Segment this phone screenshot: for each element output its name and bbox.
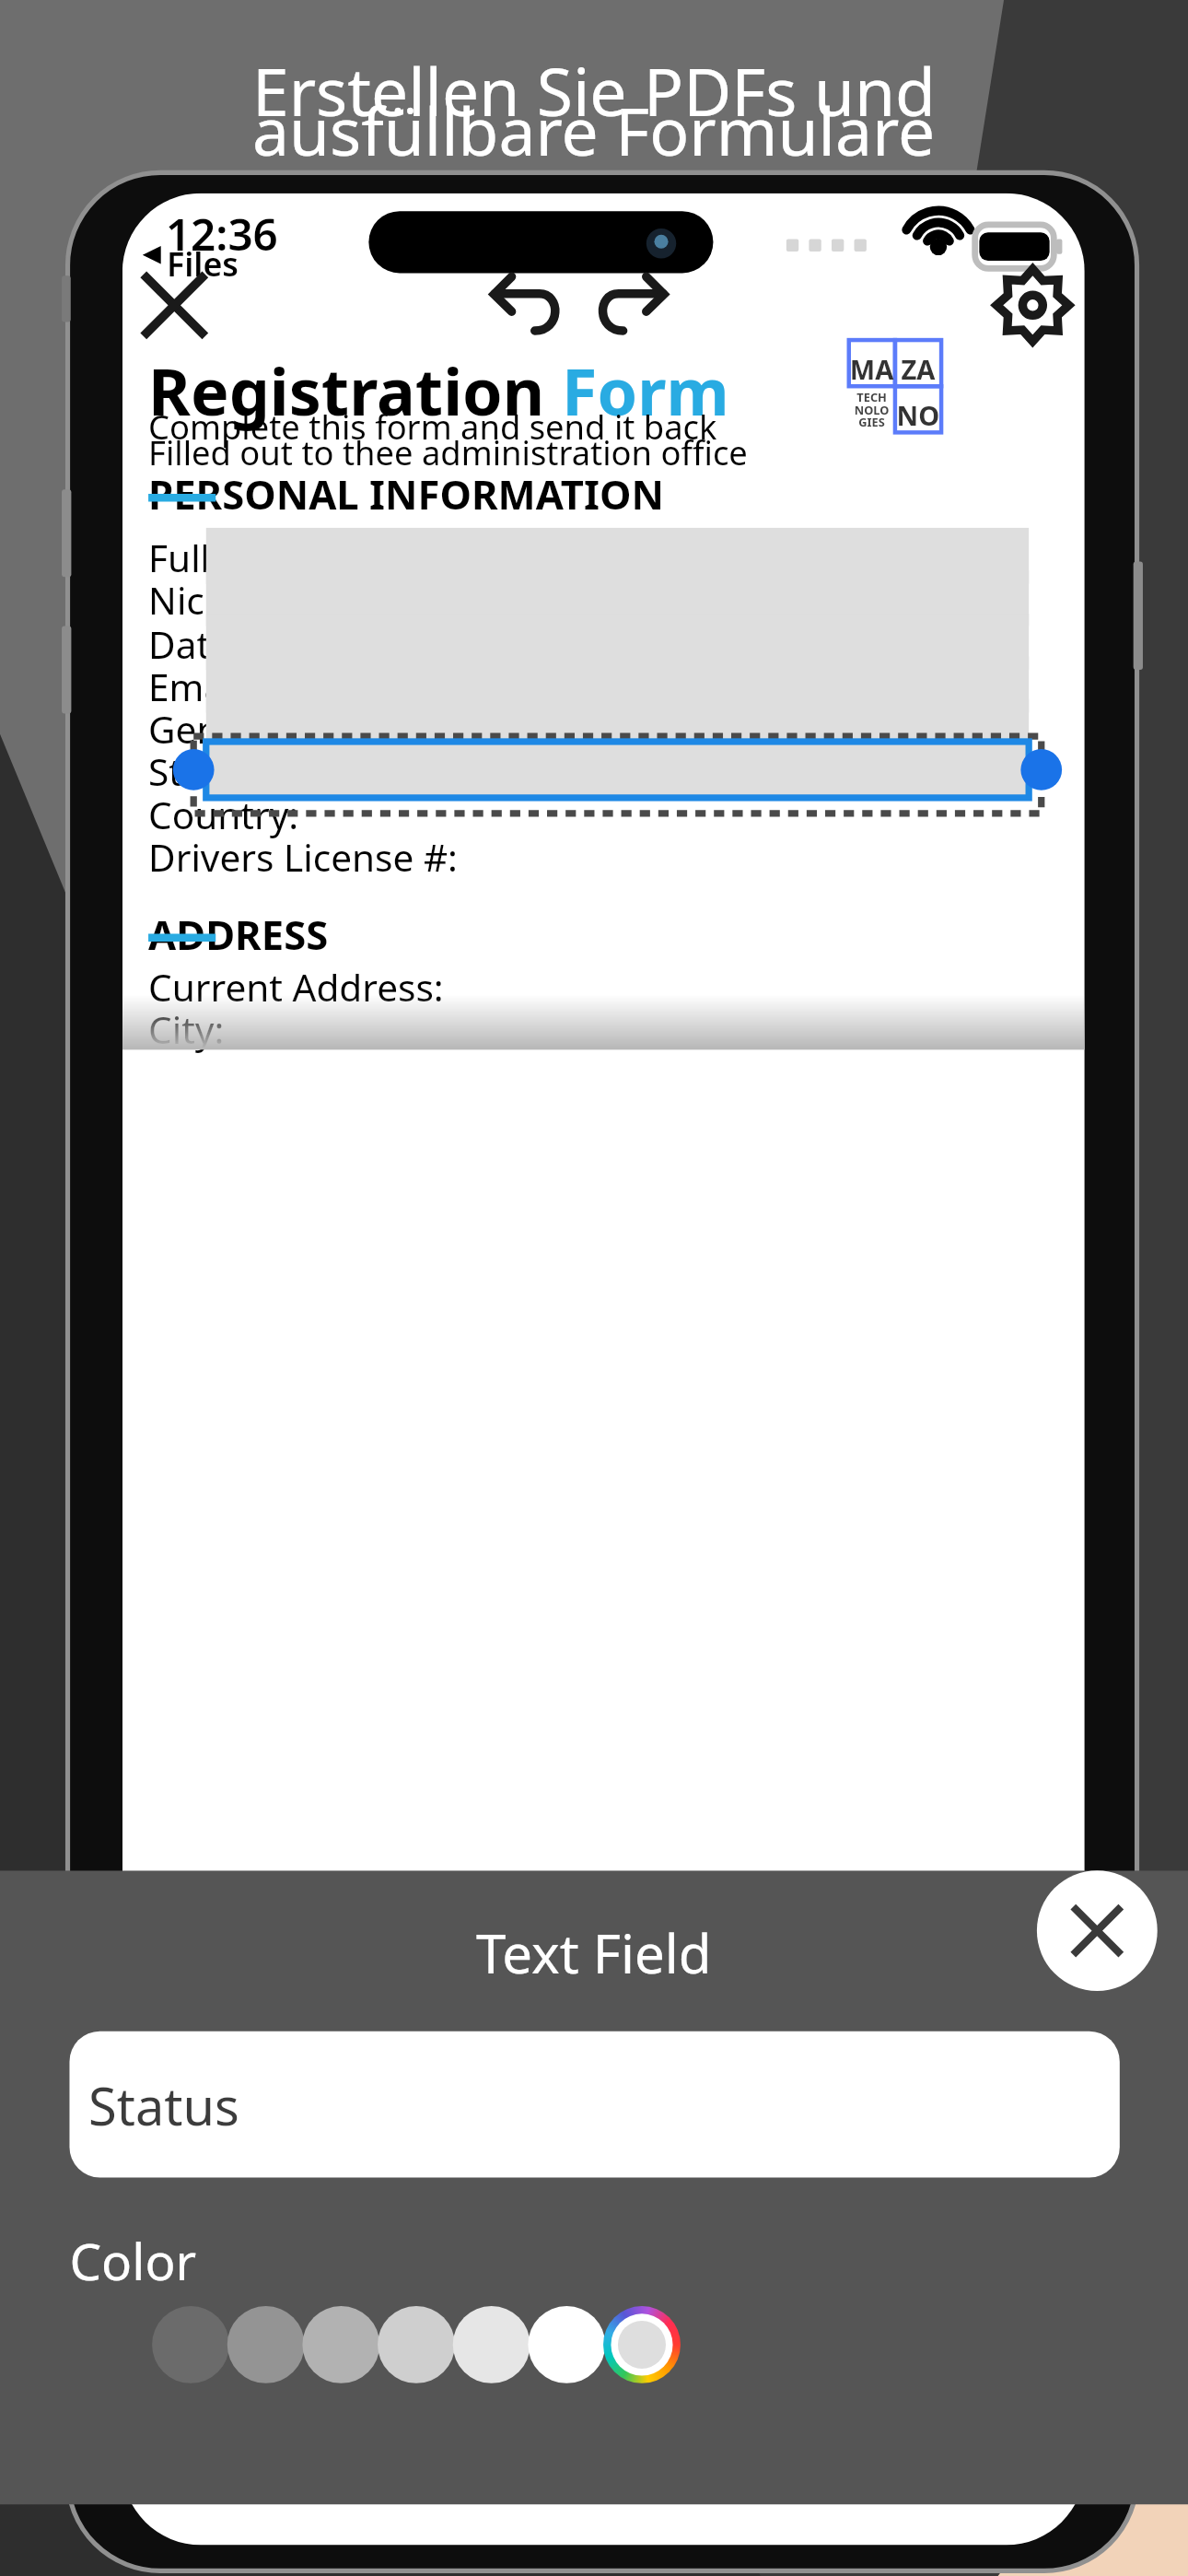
button[interactable]: Color 4 xyxy=(453,2307,530,2384)
button[interactable]: Color 0 xyxy=(152,2307,229,2384)
button[interactable]: Redo xyxy=(618,275,707,333)
button[interactable]: Color 6 xyxy=(603,2307,681,2384)
button[interactable]: Color 5 xyxy=(528,2307,605,2384)
button[interactable] xyxy=(69,2030,1119,2176)
button[interactable]: Close xyxy=(1045,1873,1152,1992)
button[interactable]: Color 2 xyxy=(302,2307,379,2384)
button[interactable]: Color 3 xyxy=(378,2307,455,2384)
button[interactable]: Undo xyxy=(511,275,600,333)
button[interactable]: Color 1 xyxy=(227,2307,305,2384)
button[interactable]: Back to Files xyxy=(124,237,231,278)
button[interactable]: Close document xyxy=(143,275,232,333)
button[interactable]: Settings xyxy=(1004,275,1093,333)
